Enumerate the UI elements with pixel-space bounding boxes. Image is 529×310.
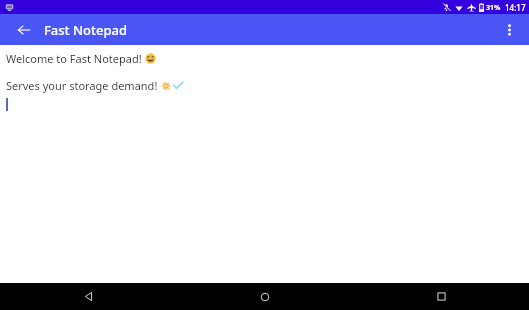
button[interactable]: Home <box>177 283 353 310</box>
button[interactable]: More options <box>494 14 525 45</box>
button[interactable]: Back <box>0 283 177 310</box>
staticText: 31% <box>486 3 501 13</box>
button[interactable]: Recent apps <box>353 283 529 310</box>
staticText: Serves your storage demand! <box>6 78 158 93</box>
button[interactable]: Navigate up <box>8 14 39 45</box>
staticText: 14:17 <box>505 2 526 13</box>
staticText: Welcome to Fast Notepad! <box>6 51 142 66</box>
button[interactable]: Welcome to Fast Notepad! <box>0 45 529 283</box>
staticText: Fast Notepad <box>44 21 128 39</box>
